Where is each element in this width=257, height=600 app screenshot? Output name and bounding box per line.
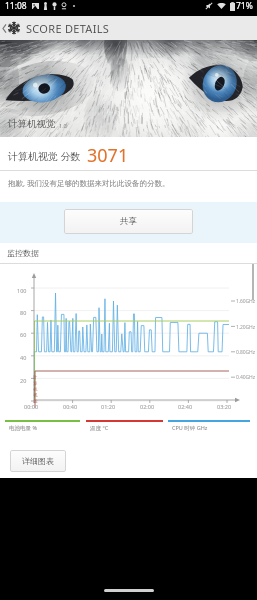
staticText: 温度 °C: [90, 424, 109, 432]
staticText: 觉: [33, 399, 38, 405]
staticText: 80: [20, 309, 27, 316]
staticText: 0.40GHz: [236, 374, 255, 381]
staticText: 电池电量 %: [9, 424, 38, 432]
staticText: 抱歉, 我们没有足够的数据来对比此设备的分数。: [8, 178, 170, 188]
staticText: 60: [20, 331, 27, 338]
button[interactable]: 详细图表: [10, 450, 66, 472]
staticText: 算: [33, 381, 38, 387]
staticText: SCORE DETAILS: [26, 21, 110, 36]
staticText: 机: [33, 387, 38, 393]
staticText: 40: [20, 354, 27, 361]
staticText: 计算机视觉 分数: [8, 149, 81, 163]
staticText: 0.80GHz: [236, 349, 255, 356]
staticText: 100: [17, 287, 27, 294]
staticText: 03:20: [217, 403, 232, 410]
staticText: 1.0: [59, 122, 67, 129]
staticText: 1.20GHz: [236, 324, 255, 331]
staticText: 71%: [236, 0, 253, 12]
staticText: 计: [33, 375, 38, 381]
staticText: 02:00: [140, 403, 155, 410]
staticText: 1.60GHz: [236, 298, 255, 305]
staticText: 01:20: [101, 403, 116, 410]
staticText: 3071: [87, 143, 129, 168]
staticText: 11:08: [5, 0, 27, 12]
staticText: 详细图表: [22, 456, 54, 466]
staticText: 00:40: [63, 403, 78, 410]
staticText: 监控数据: [7, 248, 39, 258]
staticText: 共享: [120, 216, 137, 227]
button[interactable]: 共享: [64, 209, 193, 234]
staticText: 视: [33, 393, 38, 399]
button[interactable]: Back: [2, 16, 20, 40]
staticText: 20: [20, 377, 27, 384]
staticText: CPU 时钟 GHz: [172, 424, 208, 432]
staticText: 00:00: [24, 403, 39, 410]
staticText: 02:40: [178, 403, 193, 410]
staticText: 计算机视觉: [8, 118, 56, 130]
